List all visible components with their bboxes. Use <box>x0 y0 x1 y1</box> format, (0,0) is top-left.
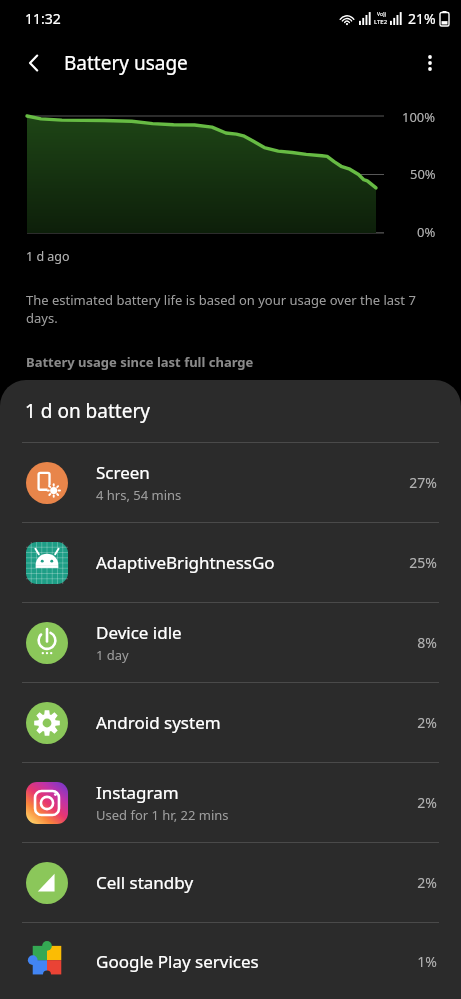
staticText: 2% <box>401 793 437 812</box>
staticText: Screen <box>96 461 150 484</box>
staticText: 50% <box>410 165 436 183</box>
button[interactable]: Back <box>14 43 54 83</box>
staticText: 8% <box>401 633 437 652</box>
staticText: The estimated battery life is based on y… <box>26 291 433 327</box>
button[interactable]: Cell standby <box>0 843 461 922</box>
button[interactable]: Instagram <box>0 763 461 842</box>
staticText: 2% <box>401 713 437 732</box>
button[interactable]: Google Play services <box>0 923 461 999</box>
staticText: Battery usage since last full charge <box>26 353 254 371</box>
staticText: Google Play services <box>96 950 259 973</box>
staticText: 1 d ago <box>26 248 70 265</box>
button[interactable]: AdaptiveBrightnessGo <box>0 523 461 602</box>
button[interactable]: Screen <box>0 443 461 522</box>
staticText: 1% <box>401 952 437 971</box>
staticText: 25% <box>401 553 437 572</box>
button[interactable]: Device idle <box>0 603 461 682</box>
staticText: Instagram <box>96 781 179 804</box>
staticText: 21% <box>408 9 436 28</box>
staticText: Battery usage <box>64 50 188 76</box>
staticText: 1 d on battery <box>25 398 150 424</box>
staticText: 1 day <box>96 646 129 664</box>
button[interactable]: More options <box>409 42 451 84</box>
staticText: Cell standby <box>96 871 194 894</box>
staticText: Used for 1 hr, 22 mins <box>96 806 229 824</box>
staticText: 11:32 <box>25 9 61 28</box>
staticText: LTE2 <box>374 18 388 26</box>
button[interactable]: Android system <box>0 683 461 762</box>
staticText: 2% <box>401 873 437 892</box>
staticText: Vo)) <box>377 11 386 18</box>
staticText: 0% <box>417 223 436 241</box>
staticText: 27% <box>401 473 437 492</box>
staticText: Android system <box>96 711 221 734</box>
staticText: AdaptiveBrightnessGo <box>96 551 275 574</box>
staticText: 4 hrs, 54 mins <box>96 486 182 504</box>
staticText: 100% <box>402 108 436 126</box>
staticText: Device idle <box>96 621 182 644</box>
